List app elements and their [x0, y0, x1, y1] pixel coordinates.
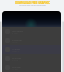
staticText: Storage: [12, 65, 21, 68]
staticText: Messages: [12, 29, 24, 32]
staticText: Phone app ui kit template: [19, 4, 46, 7]
staticText: Calendar: [12, 38, 23, 41]
staticText: Activity: [12, 47, 21, 50]
staticText: Settings: [12, 56, 22, 59]
staticText: DOWNLOAD FREE GRAPHIC: [15, 1, 50, 5]
